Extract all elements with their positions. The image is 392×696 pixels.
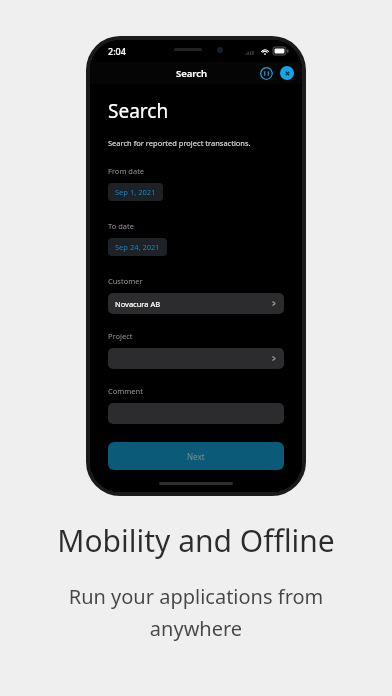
- button[interactable]: Novacura AB: [108, 293, 284, 314]
- staticText: Search: [176, 67, 208, 80]
- button[interactable]: Pause: [259, 66, 273, 80]
- button[interactable]: [108, 348, 284, 369]
- staticText: Search: [108, 98, 169, 124]
- staticText: Mobility and Offline: [57, 520, 335, 561]
- staticText: Customer: [108, 276, 143, 286]
- staticText: Run your applications from anywhere: [36, 583, 356, 642]
- staticText: Project: [108, 331, 133, 341]
- button[interactable]: Sep 1, 2021: [108, 183, 163, 201]
- staticText: Sep 24, 2021: [115, 242, 160, 252]
- staticText: Novacura AB: [115, 299, 161, 309]
- button[interactable]: Close: [280, 66, 294, 80]
- staticText: 2:04: [108, 45, 126, 57]
- button[interactable]: Next: [108, 442, 284, 470]
- button[interactable]: Sep 24, 2021: [108, 238, 167, 256]
- staticText: Sep 1, 2021: [115, 187, 156, 197]
- staticText: Search for reported project transactions…: [108, 138, 251, 148]
- staticText: To date: [108, 221, 134, 231]
- button[interactable]: [108, 403, 284, 424]
- staticText: From date: [108, 166, 145, 176]
- staticText: Next: [187, 451, 205, 462]
- staticText: Comment: [108, 386, 143, 396]
